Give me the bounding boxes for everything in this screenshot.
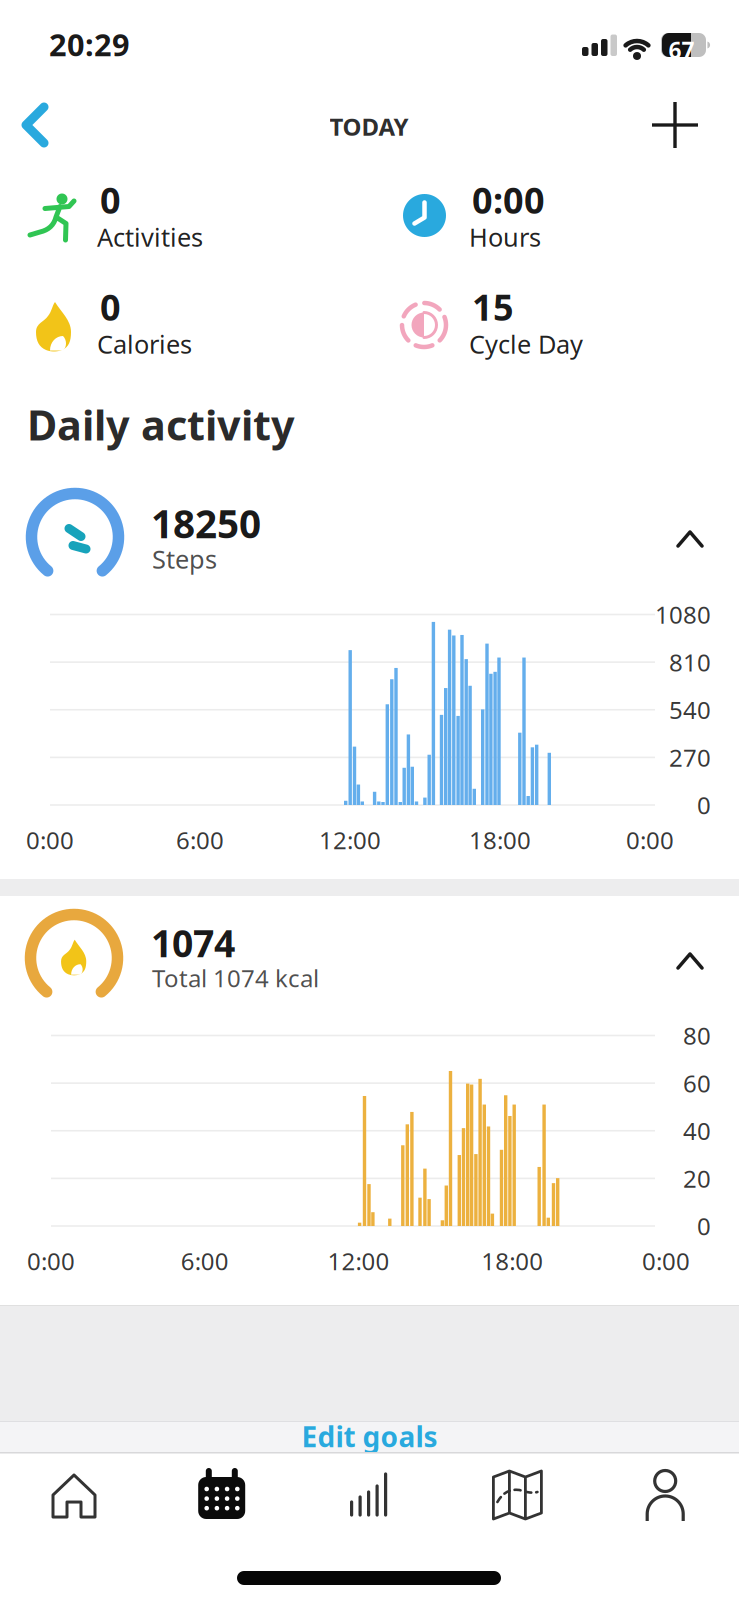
staticText: 6:00 bbox=[181, 1245, 229, 1277]
staticText: 0:00 bbox=[27, 1245, 75, 1277]
staticText: 0 bbox=[697, 789, 711, 821]
staticText: 6:00 bbox=[176, 824, 224, 856]
button[interactable]: Collapse steps bbox=[660, 508, 720, 568]
staticText: 15 bbox=[472, 283, 514, 331]
button[interactable]: Home bbox=[0, 1455, 148, 1550]
staticText: Steps bbox=[152, 542, 217, 576]
staticText: Total 1074 kcal bbox=[152, 962, 319, 994]
staticText: 0:00 bbox=[642, 1245, 690, 1277]
staticText: 67 bbox=[668, 35, 694, 65]
button[interactable]: Profile bbox=[591, 1455, 739, 1550]
staticText: 0:00 bbox=[26, 824, 74, 856]
staticText: 40 bbox=[683, 1115, 711, 1147]
staticText: 0:00 bbox=[472, 176, 545, 224]
staticText: 12:00 bbox=[319, 824, 381, 856]
staticText: Calories bbox=[97, 327, 192, 361]
staticText: 270 bbox=[669, 741, 711, 773]
button[interactable]: Today bbox=[148, 1455, 296, 1550]
staticText: Edit goals bbox=[301, 1418, 437, 1455]
staticText: Cycle Day bbox=[469, 327, 583, 361]
button[interactable]: Back bbox=[15, 95, 75, 155]
staticText: 12:00 bbox=[328, 1245, 390, 1277]
button[interactable]: Map bbox=[443, 1455, 591, 1550]
staticText: 1080 bbox=[655, 599, 711, 630]
staticText: Hours bbox=[469, 220, 541, 254]
button[interactable]: Collapse calories bbox=[660, 930, 720, 990]
staticText: 810 bbox=[669, 646, 711, 678]
staticText: 0:00 bbox=[626, 824, 674, 856]
staticText: TODAY bbox=[329, 111, 408, 142]
staticText: 0 bbox=[100, 176, 121, 224]
staticText: 540 bbox=[669, 694, 711, 726]
staticText: 20 bbox=[683, 1162, 711, 1194]
button[interactable]: Progress bbox=[296, 1455, 443, 1550]
button[interactable]: Edit goals bbox=[0, 1421, 739, 1452]
staticText: Activities bbox=[97, 220, 203, 254]
staticText: 0 bbox=[697, 1210, 711, 1242]
staticText: 18:00 bbox=[469, 824, 531, 856]
staticText: 60 bbox=[683, 1067, 711, 1099]
staticText: 20:29 bbox=[49, 24, 130, 65]
staticText: 80 bbox=[683, 1020, 711, 1051]
staticText: 18:00 bbox=[481, 1245, 543, 1277]
staticText: 0 bbox=[100, 283, 121, 331]
staticText: 1074 bbox=[151, 918, 235, 968]
staticText: 18250 bbox=[151, 497, 261, 549]
button[interactable]: Add bbox=[645, 95, 705, 155]
staticText: Daily activity bbox=[27, 397, 295, 452]
